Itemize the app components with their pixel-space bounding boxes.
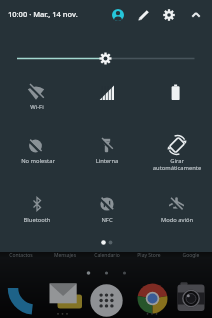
staticText: Play Store [128,252,170,259]
button[interactable] [6,278,46,318]
staticText: Mensajes [44,252,86,259]
staticText: Linterna [73,157,141,165]
button[interactable] [110,7,126,23]
button[interactable] [90,284,123,317]
button[interactable] [2,192,70,236]
button[interactable] [136,7,152,23]
button[interactable] [2,132,70,190]
staticText: Calendario [86,252,128,259]
staticText: No molestar [4,157,72,165]
button[interactable] [176,283,205,312]
staticText: 10:00 · Mar., 14 nov. [8,9,78,19]
staticText: Modo avión [143,216,211,224]
staticText: Contactos [0,252,42,259]
staticText: Wi-Fi [3,103,71,111]
staticText: Girar automáticamente [143,157,211,172]
button[interactable] [72,78,140,128]
button[interactable] [142,132,210,190]
button[interactable] [161,7,177,23]
button[interactable] [142,192,210,236]
button[interactable] [188,7,204,23]
button[interactable] [137,283,168,314]
button[interactable] [48,280,84,312]
button[interactable] [2,78,70,128]
staticText: Bluetooth [3,216,71,224]
button[interactable] [72,132,140,190]
button[interactable] [142,78,210,128]
staticText: Google [170,252,212,259]
staticText: NFC [73,216,141,224]
button[interactable] [10,46,202,70]
button[interactable] [72,192,140,236]
